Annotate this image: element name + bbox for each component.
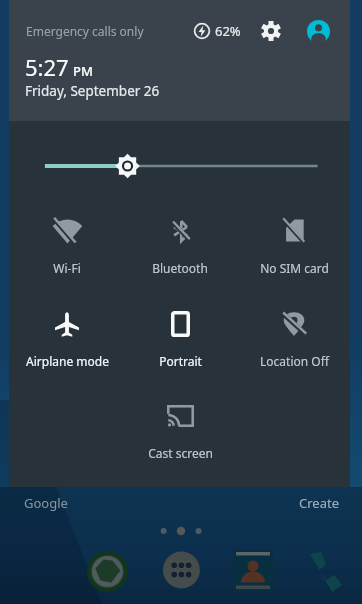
staticText: No SIM card: [260, 260, 329, 276]
button[interactable]: Portrait: [130, 303, 230, 373]
staticText: Wi-Fi: [53, 260, 81, 276]
staticText: 5:27: [25, 52, 69, 82]
staticText: Airplane mode: [26, 353, 109, 369]
staticText: 62%: [215, 22, 241, 40]
staticText: PM: [73, 62, 93, 80]
staticText: Location Off: [260, 353, 329, 369]
button[interactable]: Switch user: [303, 16, 333, 46]
staticText: Google: [24, 494, 68, 512]
staticText: Cast screen: [148, 445, 213, 461]
button[interactable]: Location Off: [244, 303, 344, 373]
staticText: Emergency calls only: [26, 23, 144, 39]
staticText: Bluetooth: [152, 260, 208, 276]
button[interactable]: Bluetooth: [130, 210, 230, 280]
button[interactable]: Airplane mode: [17, 303, 117, 373]
staticText: Create: [299, 494, 339, 512]
button[interactable]: Wi-Fi: [17, 210, 117, 280]
staticText: Portrait: [159, 353, 202, 369]
button[interactable]: Settings: [256, 16, 286, 46]
staticText: Friday, September 26: [25, 82, 160, 100]
button[interactable]: No SIM card: [244, 210, 344, 280]
button[interactable]: Cast screen: [130, 395, 230, 465]
